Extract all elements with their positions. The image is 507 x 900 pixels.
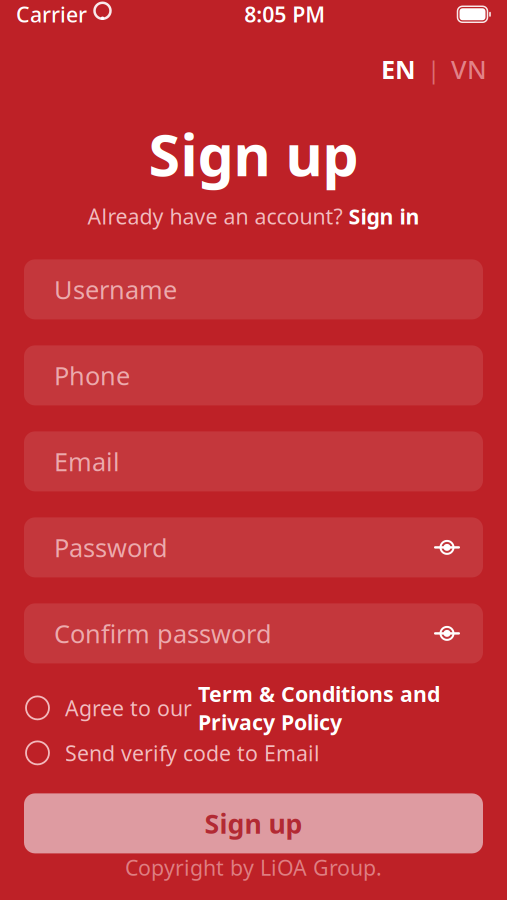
button[interactable]: Username — [24, 259, 483, 319]
button[interactable]: VN — [451, 48, 487, 90]
staticText: Username — [54, 273, 177, 306]
staticText: Send verify code to Email — [65, 739, 320, 767]
staticText: Password — [54, 531, 168, 564]
button[interactable]: Email — [24, 431, 483, 491]
staticText: Term & Conditions and Privacy Policy — [198, 680, 440, 736]
staticText: Agree to our — [65, 694, 198, 722]
button[interactable]: Agree to our — [24, 685, 483, 730]
staticText: 8:05 PM — [244, 0, 325, 28]
staticText: Sign in — [348, 202, 419, 230]
staticText: Already have an account? — [87, 202, 348, 230]
button[interactable]: Sign in — [348, 202, 419, 230]
button[interactable]: Phone — [24, 345, 483, 405]
staticText: Sign up — [204, 806, 302, 841]
staticText: EN — [381, 52, 416, 86]
button[interactable]: Confirm password — [24, 603, 483, 663]
staticText: | — [427, 53, 440, 85]
staticText: Email — [54, 445, 120, 478]
button[interactable]: Sign up — [24, 793, 483, 853]
staticText: Phone — [54, 359, 130, 392]
staticText: Sign up — [148, 116, 358, 192]
staticText: Copyright by LiOA Group. — [125, 853, 382, 882]
button[interactable]: EN — [381, 48, 416, 90]
button[interactable]: Password — [24, 517, 483, 577]
staticText: VN — [451, 52, 487, 86]
button[interactable]: Send verify code to Email — [24, 730, 483, 775]
staticText: Confirm password — [54, 617, 272, 650]
staticText: Carrier — [16, 0, 87, 28]
